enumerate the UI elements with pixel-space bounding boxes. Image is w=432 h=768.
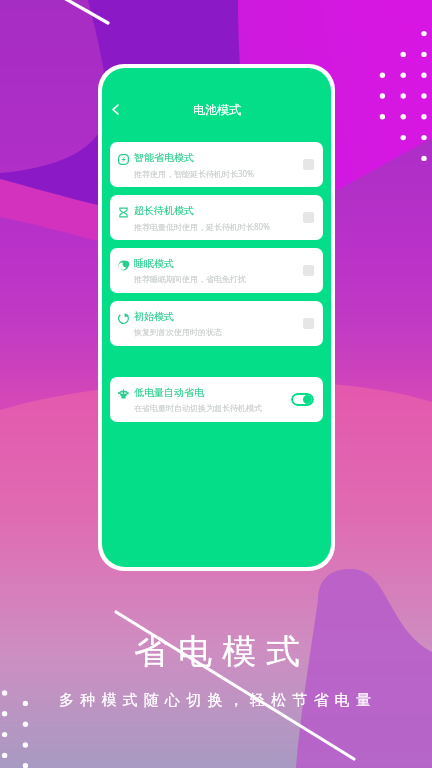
staticText: 电池模式 — [193, 102, 241, 117]
staticText: 智能省电模式 — [134, 151, 194, 164]
staticText: 睡眠模式 — [134, 257, 174, 270]
button[interactable]: Back — [104, 98, 126, 120]
staticText: 初始模式 — [134, 310, 174, 323]
staticText: 超长待机模式 — [134, 204, 194, 217]
staticText: 推荐睡眠期间使用，省电免打扰 — [134, 274, 246, 284]
button[interactable]: Toggle auto power saving — [291, 393, 314, 406]
button[interactable]: 智能省电模式 — [110, 142, 323, 187]
staticText: 推荐电量低时使用，延长待机时长80% — [134, 221, 270, 232]
staticText: 在省电量时自动切换为超长待机模式 — [134, 403, 262, 413]
button[interactable]: 睡眠模式 — [110, 248, 323, 293]
button[interactable]: 低电量自动省电 — [110, 377, 323, 422]
button[interactable]: 超长待机模式 — [110, 195, 323, 240]
staticText: 低电量自动省电 — [134, 386, 204, 399]
staticText: 多种模式随心切换，轻松节省电量 — [2, 691, 432, 710]
staticText: 省电模式 — [6, 630, 432, 673]
button[interactable]: 初始模式 — [110, 301, 323, 346]
staticText: 推荐使用，智能延长待机时长30% — [134, 168, 254, 179]
staticText: 恢复到首次使用时的状态 — [134, 327, 222, 337]
